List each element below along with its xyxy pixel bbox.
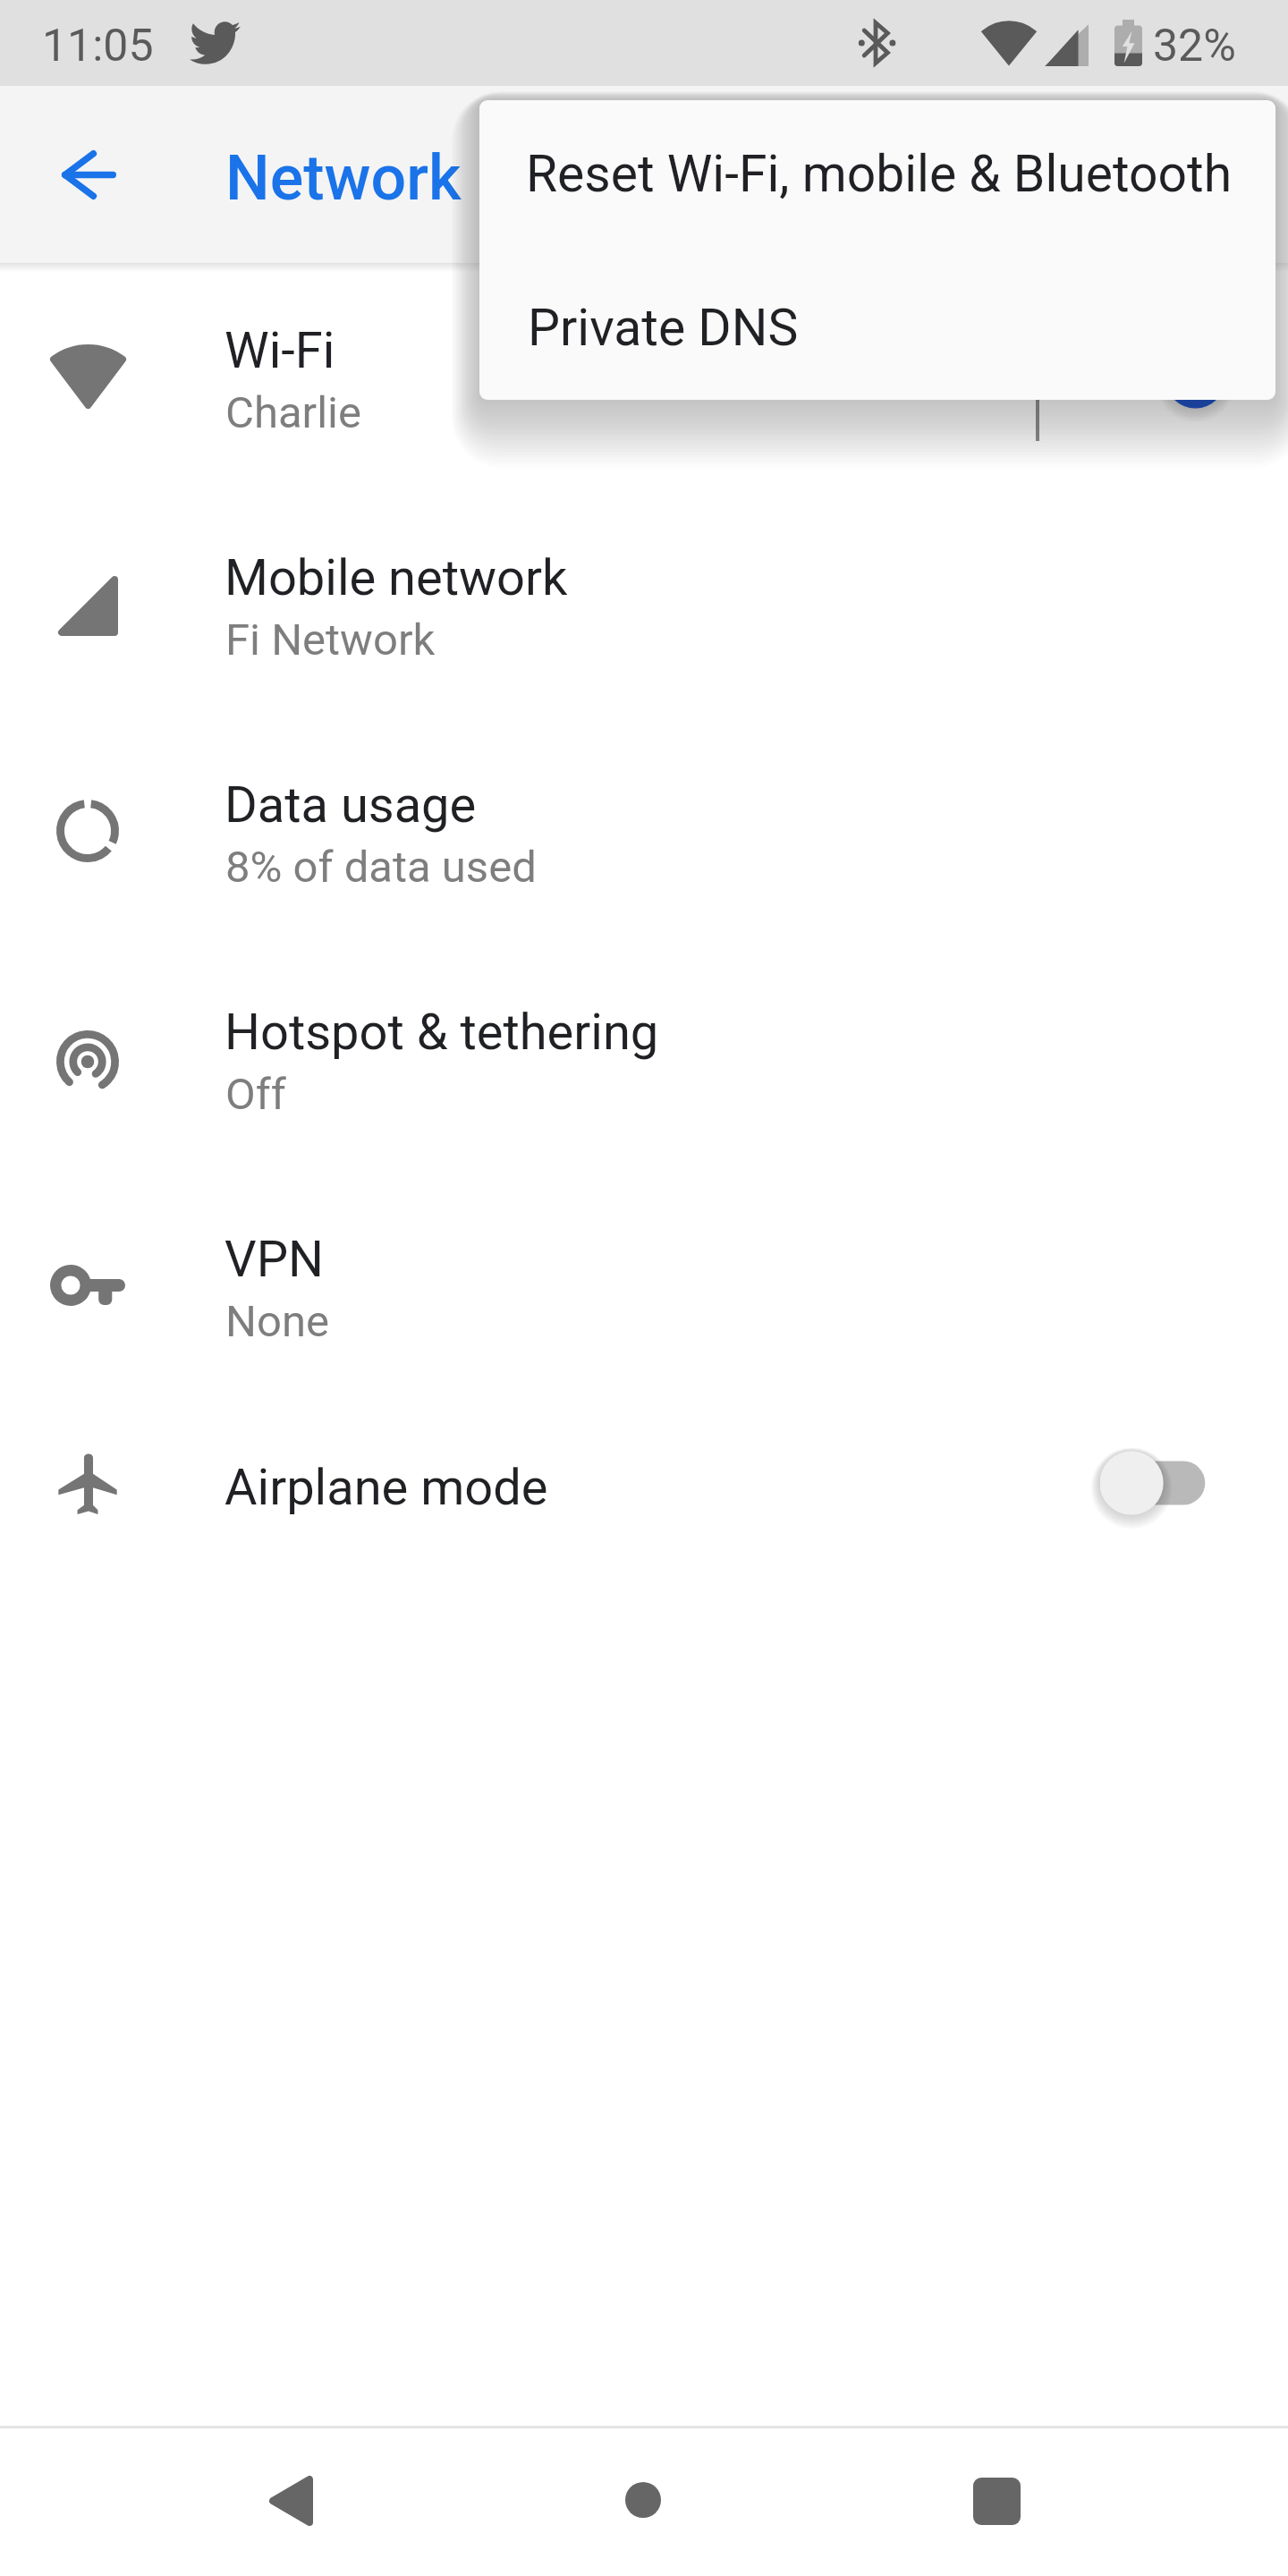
button[interactable]: Hotspot & tethering xyxy=(0,947,1288,1174)
staticText: Charlie xyxy=(225,387,361,438)
staticText: Fi Network xyxy=(225,614,436,665)
button[interactable]: Back xyxy=(228,2451,353,2551)
staticText: Reset Wi-Fi, mobile & Bluetooth xyxy=(526,144,1233,204)
staticText: None xyxy=(225,1296,329,1347)
button[interactable]: Data usage xyxy=(0,720,1288,947)
staticText: Network xyxy=(225,141,462,215)
button[interactable]: Airplane mode xyxy=(0,1402,1288,1630)
staticText: Off xyxy=(225,1069,286,1120)
button[interactable]: Wi-Fi xyxy=(0,266,1288,493)
staticText: VPN xyxy=(225,1230,324,1289)
staticText: 11:05 xyxy=(42,20,154,72)
button[interactable]: Recent apps xyxy=(935,2451,1060,2551)
staticText: Wi-Fi xyxy=(225,321,335,380)
button[interactable]: Home xyxy=(580,2451,706,2551)
button[interactable]: Private DNS xyxy=(479,250,1275,400)
button[interactable]: VPN xyxy=(0,1174,1288,1402)
staticText: Private DNS xyxy=(528,298,799,358)
button[interactable]: Toggle Wi-Fi xyxy=(1055,266,1288,493)
staticText: Mobile network xyxy=(225,548,568,607)
button[interactable]: Toggle Airplane mode xyxy=(1055,1402,1288,1630)
button[interactable]: Reset Wi-Fi, mobile & Bluetooth xyxy=(479,100,1275,250)
staticText: 32% xyxy=(1153,20,1236,72)
button[interactable]: Navigate up xyxy=(39,125,140,225)
staticText: Hotspot & tethering xyxy=(225,1003,659,1062)
staticText: 8% of data used xyxy=(225,842,537,893)
button[interactable]: Mobile network xyxy=(0,493,1288,720)
staticText: Data usage xyxy=(225,775,477,835)
staticText: Airplane mode xyxy=(225,1458,548,1517)
